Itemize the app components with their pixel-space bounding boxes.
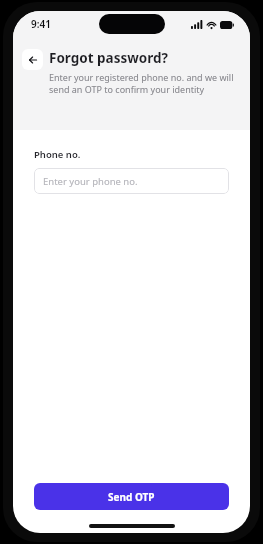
staticText: Phone no.	[34, 148, 81, 161]
button[interactable]: Send OTP	[34, 483, 229, 510]
staticText: Forgot password?	[49, 49, 168, 67]
staticText: Send OTP	[108, 490, 155, 504]
button[interactable]: Back	[22, 49, 43, 70]
staticText: Enter your registered phone no. and we w…	[49, 71, 236, 96]
staticText: 9:41	[31, 17, 51, 31]
staticText: Enter your phone no.	[43, 175, 138, 188]
button[interactable]: Enter your phone no.	[34, 168, 229, 194]
